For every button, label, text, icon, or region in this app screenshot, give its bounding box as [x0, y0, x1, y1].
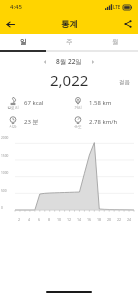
staticText: 1000	[1, 171, 9, 175]
staticText: 4:45	[10, 3, 22, 11]
staticText: 2,022	[50, 70, 89, 90]
staticText: 시간	[9, 124, 17, 129]
button[interactable]: Share	[118, 14, 138, 34]
button[interactable]: 속도	[69, 114, 134, 130]
staticText: 통계	[61, 19, 78, 30]
staticText: 12	[67, 217, 72, 222]
staticText: 4	[28, 217, 31, 222]
staticText: 월	[112, 38, 119, 46]
button[interactable]: Next day	[87, 56, 99, 68]
staticText: 0	[1, 206, 3, 210]
button[interactable]: 거리	[69, 95, 134, 111]
staticText: 1500	[1, 154, 9, 158]
staticText: 500	[1, 189, 7, 193]
staticText: 2000	[1, 136, 9, 140]
staticText: 10	[57, 217, 62, 222]
button[interactable]: 일	[0, 34, 46, 50]
staticText: 거리	[74, 105, 82, 110]
button[interactable]: 칼로리	[4, 95, 69, 111]
staticText: 67 kcal	[24, 99, 44, 107]
staticText: 18	[97, 217, 102, 222]
button[interactable]: Previous day	[39, 56, 51, 68]
staticText: 1.58 km	[89, 99, 112, 107]
staticText: 22	[117, 217, 122, 222]
button[interactable]: Back	[0, 14, 20, 34]
staticText: 속도	[74, 124, 82, 129]
staticText: 6	[38, 217, 41, 222]
staticText: 일	[20, 38, 27, 46]
staticText: 칼로리	[7, 105, 19, 110]
staticText: 23 분	[24, 118, 39, 126]
staticText: 16	[87, 217, 92, 222]
staticText: 14	[77, 217, 82, 222]
staticText: LTE	[113, 4, 121, 10]
staticText: 2	[18, 217, 21, 222]
button[interactable]: 월	[92, 34, 138, 50]
staticText: 24	[127, 217, 132, 222]
staticText: 걸음	[119, 79, 130, 86]
staticText: 8	[48, 217, 51, 222]
button[interactable]: 시간	[4, 114, 69, 130]
button[interactable]: 주	[46, 34, 92, 50]
staticText: 20	[107, 217, 112, 222]
staticText: 8월 22일	[56, 57, 82, 66]
staticText: 2.78 km/h	[89, 118, 118, 126]
staticText: 주	[66, 38, 73, 46]
